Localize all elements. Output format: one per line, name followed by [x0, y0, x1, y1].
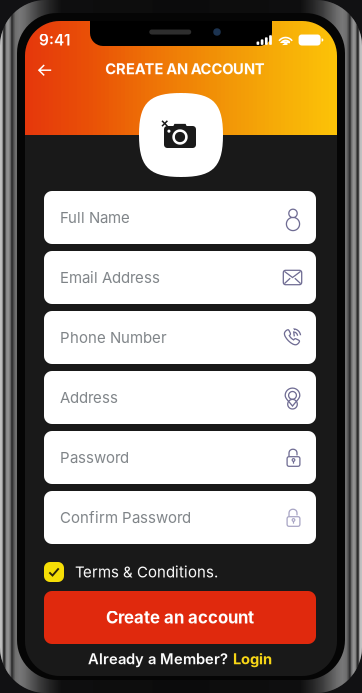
- button[interactable]: Terms & Conditions.: [44, 561, 316, 583]
- staticText: Address: [60, 388, 118, 407]
- button[interactable]: Full Name: [44, 191, 316, 244]
- button[interactable]: Already a Member?: [44, 649, 316, 669]
- staticText: 9:41: [39, 31, 70, 49]
- button[interactable]: Create an account: [44, 591, 316, 644]
- button[interactable]: Back: [28, 57, 62, 83]
- button[interactable]: Add profile photo: [139, 93, 223, 177]
- staticText: Terms & Conditions.: [75, 563, 218, 581]
- staticText: Email Address: [60, 268, 160, 287]
- staticText: Create an account: [106, 607, 254, 628]
- staticText: CREATE AN ACCOUNT: [105, 60, 265, 78]
- staticText: Confirm Password: [60, 508, 191, 527]
- staticText: Password: [60, 448, 129, 467]
- button[interactable]: Phone Number: [44, 311, 316, 364]
- staticText: Phone Number: [60, 328, 167, 347]
- button[interactable]: Email Address: [44, 251, 316, 304]
- button[interactable]: Confirm Password: [44, 491, 316, 544]
- button[interactable]: Address: [44, 371, 316, 424]
- staticText: Login: [233, 650, 272, 668]
- button[interactable]: Password: [44, 431, 316, 484]
- staticText: Full Name: [60, 208, 130, 227]
- staticText: Already a Member?: [88, 650, 228, 668]
